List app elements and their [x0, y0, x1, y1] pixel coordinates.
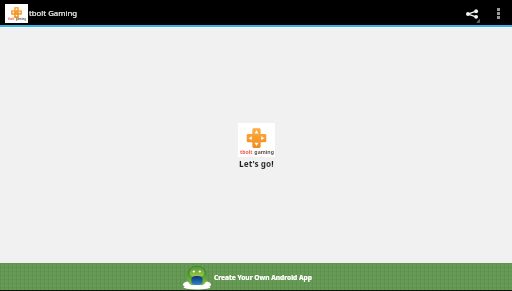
staticText: tbolt Gaming — [29, 8, 78, 19]
button[interactable]: tbolt — [238, 123, 275, 169]
button[interactable]: Share — [461, 1, 485, 25]
button[interactable]: Create Your Own Android App — [0, 263, 512, 291]
staticText: Create Your Own Android App — [214, 273, 312, 282]
staticText: gaming — [253, 148, 274, 155]
staticText: gaming — [15, 17, 26, 21]
staticText: Let's go! — [239, 158, 274, 169]
button[interactable]: More options — [488, 3, 508, 23]
staticText: tbolt — [8, 17, 15, 21]
staticText: tbolt — [240, 148, 253, 155]
button[interactable]: App icon, tbolt Gaming — [5, 4, 28, 23]
